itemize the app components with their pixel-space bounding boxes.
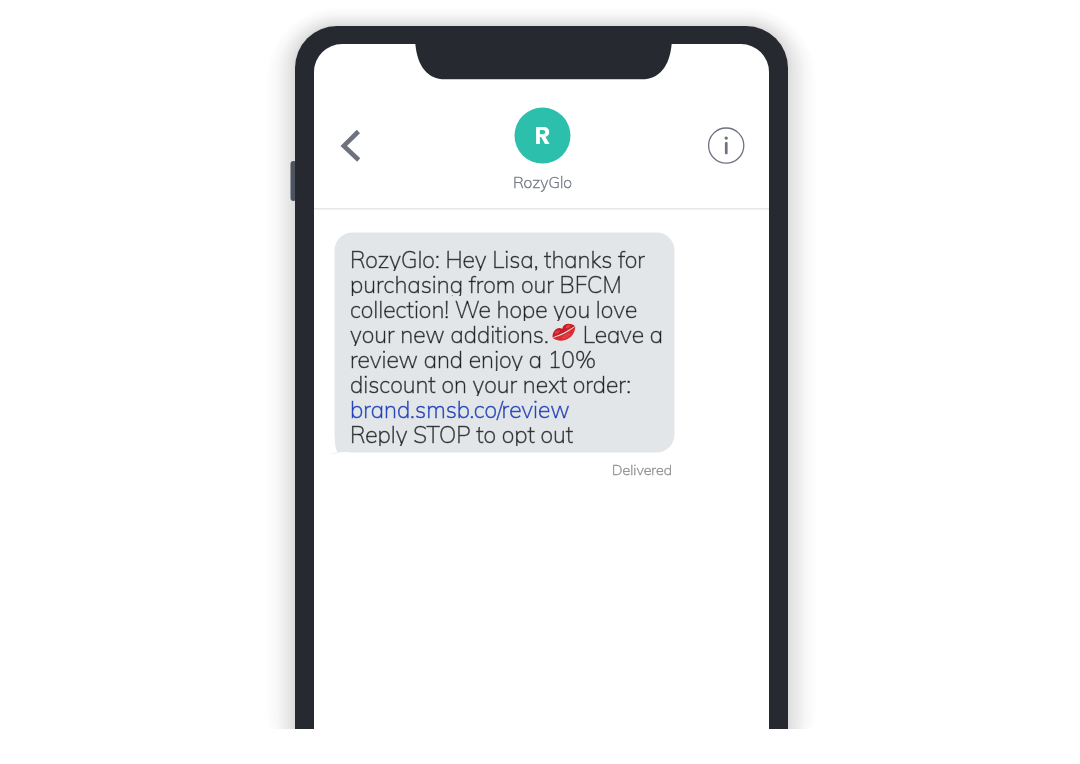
staticText: Delivered [480, 461, 672, 481]
staticText: collection! We hope you love [350, 295, 690, 321]
staticText: R [489, 118, 596, 148]
staticText: purchasing from our BFCM [350, 270, 690, 296]
staticText: RozyGlo: Hey Lisa, thanks for [350, 245, 690, 271]
staticText: purchasing from our BFCM [350, 270, 690, 296]
staticText: discount on your next order: [350, 370, 690, 396]
button[interactable]: R [489, 104, 596, 196]
staticText: review and enjoy a 10% [350, 345, 690, 371]
staticText: your new additions. Leave a [350, 320, 690, 346]
staticText: brand.smsb.co/review [350, 395, 690, 421]
staticText: RozyGlo [489, 172, 596, 194]
staticText: Reply STOP to opt out [350, 420, 690, 446]
button[interactable]: Back [332, 120, 376, 172]
button[interactable]: Details [707, 127, 745, 165]
staticText: review and enjoy a 10% [350, 345, 690, 371]
staticText: your new additions. Leave a [350, 320, 690, 346]
staticText: brand.smsb.co/review [350, 395, 690, 421]
staticText: Reply STOP to opt out [350, 420, 690, 446]
staticText: collection! We hope you love [350, 295, 690, 321]
staticText: discount on your next order: [350, 370, 690, 396]
staticText: RozyGlo: Hey Lisa, thanks for [350, 245, 690, 271]
staticText: RozyGlo [489, 172, 596, 194]
staticText: Delivered [480, 461, 672, 481]
